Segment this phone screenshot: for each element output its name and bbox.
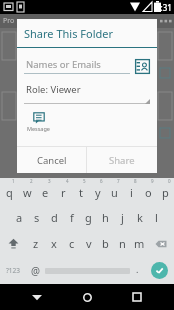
- button[interactable]: Shift: [0, 230, 27, 257]
- staticText: b: [102, 236, 109, 251]
- staticText: n: [119, 236, 126, 251]
- button[interactable]: 6: [89, 178, 106, 204]
- staticText: h: [102, 210, 109, 225]
- button[interactable]: n: [114, 230, 131, 257]
- staticText: Names or Emails: [26, 58, 101, 71]
- staticText: 1: [12, 178, 15, 184]
- button[interactable]: m: [131, 230, 148, 257]
- button[interactable]: 3: [36, 178, 54, 204]
- button[interactable]: Home: [74, 284, 100, 310]
- staticText: Role: Viewer: [26, 83, 81, 96]
- button[interactable]: f: [63, 204, 80, 230]
- staticText: z: [33, 236, 39, 251]
- button[interactable]: b: [97, 230, 114, 257]
- staticText: 9: [151, 178, 154, 184]
- staticText: 3: [48, 178, 51, 184]
- staticText: x: [51, 236, 57, 251]
- staticText: w: [23, 185, 32, 200]
- staticText: i: [130, 185, 133, 200]
- staticText: g: [85, 210, 92, 225]
- staticText: Cancel: [37, 154, 67, 167]
- button[interactable]: v: [80, 230, 97, 257]
- staticText: 0: [168, 178, 171, 184]
- button[interactable]: Enter: [145, 257, 174, 284]
- staticText: s: [34, 210, 40, 225]
- button[interactable]: z: [27, 230, 45, 257]
- button[interactable]: 5: [72, 178, 89, 204]
- button[interactable]: 1: [0, 178, 18, 204]
- staticText: ?123: [6, 266, 20, 275]
- button[interactable]: k: [131, 204, 148, 230]
- staticText: d: [51, 210, 58, 225]
- button[interactable]: 4: [54, 178, 72, 204]
- button[interactable]: 7: [106, 178, 123, 204]
- button[interactable]: Names or Emails: [24, 58, 130, 74]
- staticText: q: [6, 185, 13, 200]
- staticText: 7:31: [156, 2, 172, 13]
- button[interactable]: j: [114, 204, 131, 230]
- staticText: .: [136, 263, 139, 275]
- button[interactable]: 8: [123, 178, 140, 204]
- staticText: 5: [83, 178, 86, 184]
- staticText: 2: [30, 178, 33, 184]
- button[interactable]: l: [148, 204, 165, 230]
- staticText: c: [69, 236, 75, 251]
- staticText: 8: [134, 178, 137, 184]
- button[interactable]: Share: [87, 147, 157, 173]
- staticText: p: [162, 185, 169, 200]
- button[interactable]: 0: [157, 178, 174, 204]
- button[interactable]: Role: Viewer: [24, 83, 150, 104]
- staticText: 6: [100, 178, 103, 184]
- staticText: 7: [117, 178, 120, 184]
- button[interactable]: 2: [18, 178, 36, 204]
- staticText: v: [86, 236, 92, 251]
- staticText: 4: [66, 178, 69, 184]
- staticText: a: [16, 210, 23, 225]
- button[interactable]: s: [28, 204, 46, 230]
- button[interactable]: d: [46, 204, 63, 230]
- button[interactable]: a: [10, 204, 28, 230]
- staticText: Share: [109, 154, 135, 167]
- button[interactable]: .: [130, 257, 145, 284]
- button[interactable]: ?123: [0, 257, 26, 284]
- staticText: Share This Folder: [24, 26, 113, 41]
- staticText: f: [70, 210, 74, 225]
- staticText: Message: [27, 125, 50, 132]
- button[interactable]: Space: [45, 264, 130, 277]
- button[interactable]: Cancel: [17, 147, 86, 173]
- staticText: o: [145, 185, 152, 200]
- staticText: e: [42, 185, 49, 200]
- staticText: Pro: [3, 16, 15, 26]
- staticText: j: [121, 210, 124, 225]
- button[interactable]: Backspace: [148, 230, 174, 257]
- staticText: m: [134, 236, 145, 251]
- staticText: k: [137, 210, 143, 225]
- button[interactable]: @: [26, 257, 45, 284]
- staticText: t: [79, 185, 83, 200]
- staticText: r: [61, 185, 66, 200]
- button[interactable]: h: [97, 204, 114, 230]
- staticText: u: [111, 185, 118, 200]
- button[interactable]: 9: [140, 178, 157, 204]
- button[interactable]: Back: [24, 284, 50, 310]
- button[interactable]: c: [63, 230, 80, 257]
- staticText: y: [95, 185, 101, 200]
- button[interactable]: g: [80, 204, 97, 230]
- button[interactable]: Pick contact: [135, 59, 150, 74]
- button[interactable]: Message: [24, 111, 53, 133]
- button[interactable]: Recents: [124, 284, 150, 310]
- staticText: l: [155, 210, 158, 225]
- button[interactable]: x: [45, 230, 63, 257]
- staticText: @: [31, 264, 40, 278]
